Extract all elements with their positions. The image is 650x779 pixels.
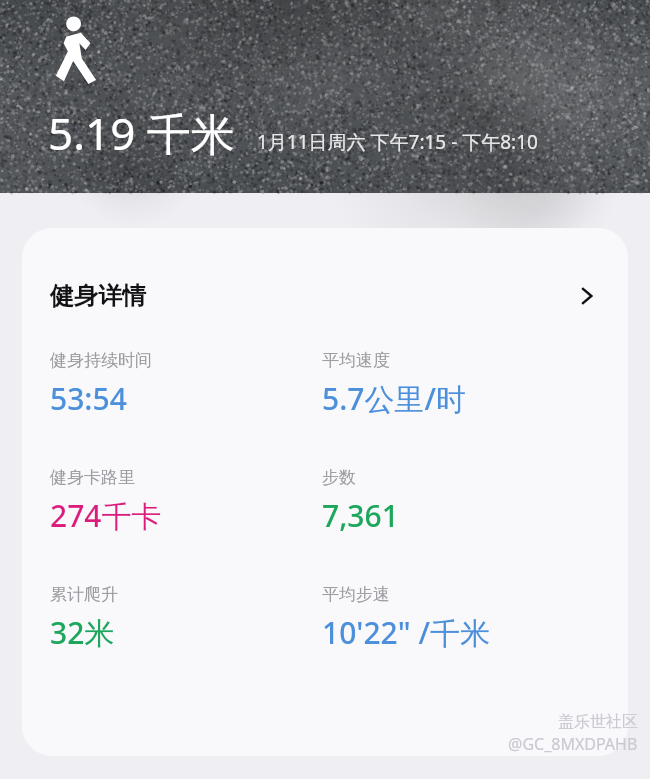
staticText: 健身卡路里	[50, 467, 135, 488]
staticText: 平均速度	[322, 350, 390, 371]
staticText: 健身详情	[50, 281, 146, 311]
staticText: @GC_8MXDPAHB	[508, 733, 638, 755]
staticText: 5.19 千米	[48, 103, 235, 163]
staticText: 10'22" /千米	[322, 612, 490, 653]
staticText: 32米	[50, 612, 115, 653]
button[interactable]: View workout details	[568, 277, 606, 315]
button[interactable]: 健身详情	[22, 268, 628, 324]
staticText: 平均步速	[322, 584, 390, 605]
staticText: 53:54	[50, 378, 127, 419]
staticText: 健身持续时间	[50, 350, 152, 371]
staticText: 7,361	[322, 495, 399, 536]
staticText: 步数	[322, 467, 356, 488]
staticText: 5.7公里/时	[322, 378, 467, 419]
staticText: 274千卡	[50, 495, 162, 536]
staticText: 盖乐世社区	[558, 712, 638, 732]
staticText: 累计爬升	[50, 584, 118, 605]
staticText: 1月11日周六 下午7:15 - 下午8:10	[257, 129, 538, 155]
